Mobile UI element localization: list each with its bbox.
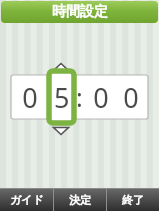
- button[interactable]: 0: [116, 75, 146, 119]
- button[interactable]: 5: [49, 75, 73, 119]
- button[interactable]: Decrease: [52, 126, 70, 136]
- button[interactable]: ガイド: [0, 188, 53, 211]
- button[interactable]: 決定: [54, 188, 106, 211]
- button[interactable]: 終了: [107, 188, 159, 211]
- button[interactable]: 0: [86, 75, 116, 119]
- staticText: :: [76, 80, 83, 114]
- staticText: 0: [93, 79, 109, 116]
- staticText: 0: [123, 79, 139, 116]
- staticText: ガイド: [10, 193, 44, 207]
- staticText: 決定: [69, 193, 91, 207]
- staticText: 終了: [122, 193, 144, 207]
- staticText: 5: [54, 79, 70, 116]
- button[interactable]: Increase: [52, 62, 70, 72]
- button[interactable]: 0: [11, 75, 49, 119]
- button[interactable]: Selected digit: [49, 71, 74, 123]
- staticText: 時間設定: [52, 3, 108, 21]
- staticText: 0: [22, 79, 38, 116]
- staticText: 5: [53, 79, 69, 116]
